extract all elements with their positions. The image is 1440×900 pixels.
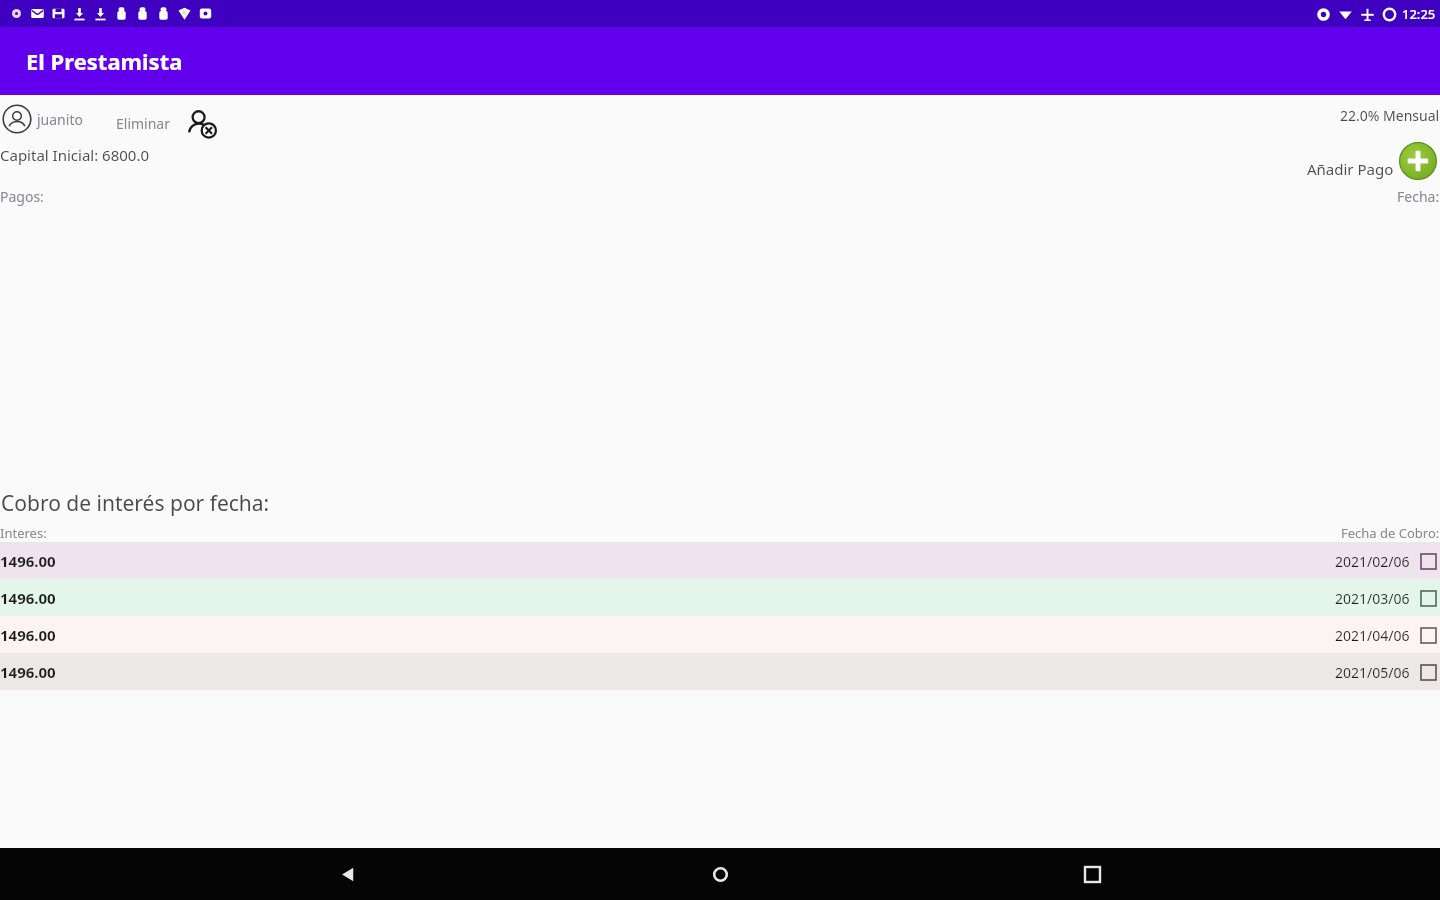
button[interactable]: Marcar cobro 2021/03/06: [1416, 586, 1440, 610]
staticText: Pagos:: [0, 187, 44, 206]
button[interactable]: 1496.00: [0, 579, 1440, 616]
staticText: 12:25: [1402, 5, 1436, 23]
staticText: Eliminar: [116, 114, 170, 133]
button[interactable]: 1496.00: [0, 542, 1440, 579]
button[interactable]: Perfil: [0, 102, 34, 136]
staticText: 1496.00: [0, 588, 56, 608]
staticText: 1496.00: [0, 551, 56, 571]
staticText: Interes:: [0, 524, 47, 542]
staticText: 1496.00: [0, 662, 56, 682]
staticText: Añadir Pago: [1307, 159, 1394, 179]
staticText: 1496.00: [0, 625, 56, 645]
staticText: juanito: [37, 110, 83, 129]
staticText: Cobro de interés por fecha:: [1, 489, 270, 518]
staticText: Capital Inicial: 6800.0: [0, 145, 150, 165]
staticText: 2021/02/06: [1335, 552, 1410, 571]
staticText: 22.0% Mensual: [1340, 106, 1440, 125]
button[interactable]: Marcar cobro 2021/02/06: [1416, 549, 1440, 573]
staticText: 2021/04/06: [1335, 626, 1410, 645]
button[interactable]: Marcar cobro 2021/05/06: [1416, 660, 1440, 684]
staticText: 2021/05/06: [1335, 663, 1410, 682]
button[interactable]: Marcar cobro 2021/04/06: [1416, 623, 1440, 647]
staticText: El Prestamista: [26, 46, 183, 76]
button[interactable]: 1496.00: [0, 653, 1440, 690]
staticText: 2021/03/06: [1335, 589, 1410, 608]
button[interactable]: Añadir Pago: [1396, 139, 1440, 183]
button[interactable]: Home: [696, 850, 744, 898]
button[interactable]: Back: [324, 850, 372, 898]
staticText: Fecha:: [1397, 187, 1440, 206]
button[interactable]: 1496.00: [0, 616, 1440, 653]
button[interactable]: Recent apps: [1068, 850, 1116, 898]
staticText: Fecha de Cobro:: [1341, 524, 1440, 542]
button[interactable]: Eliminar cliente: [182, 105, 222, 145]
